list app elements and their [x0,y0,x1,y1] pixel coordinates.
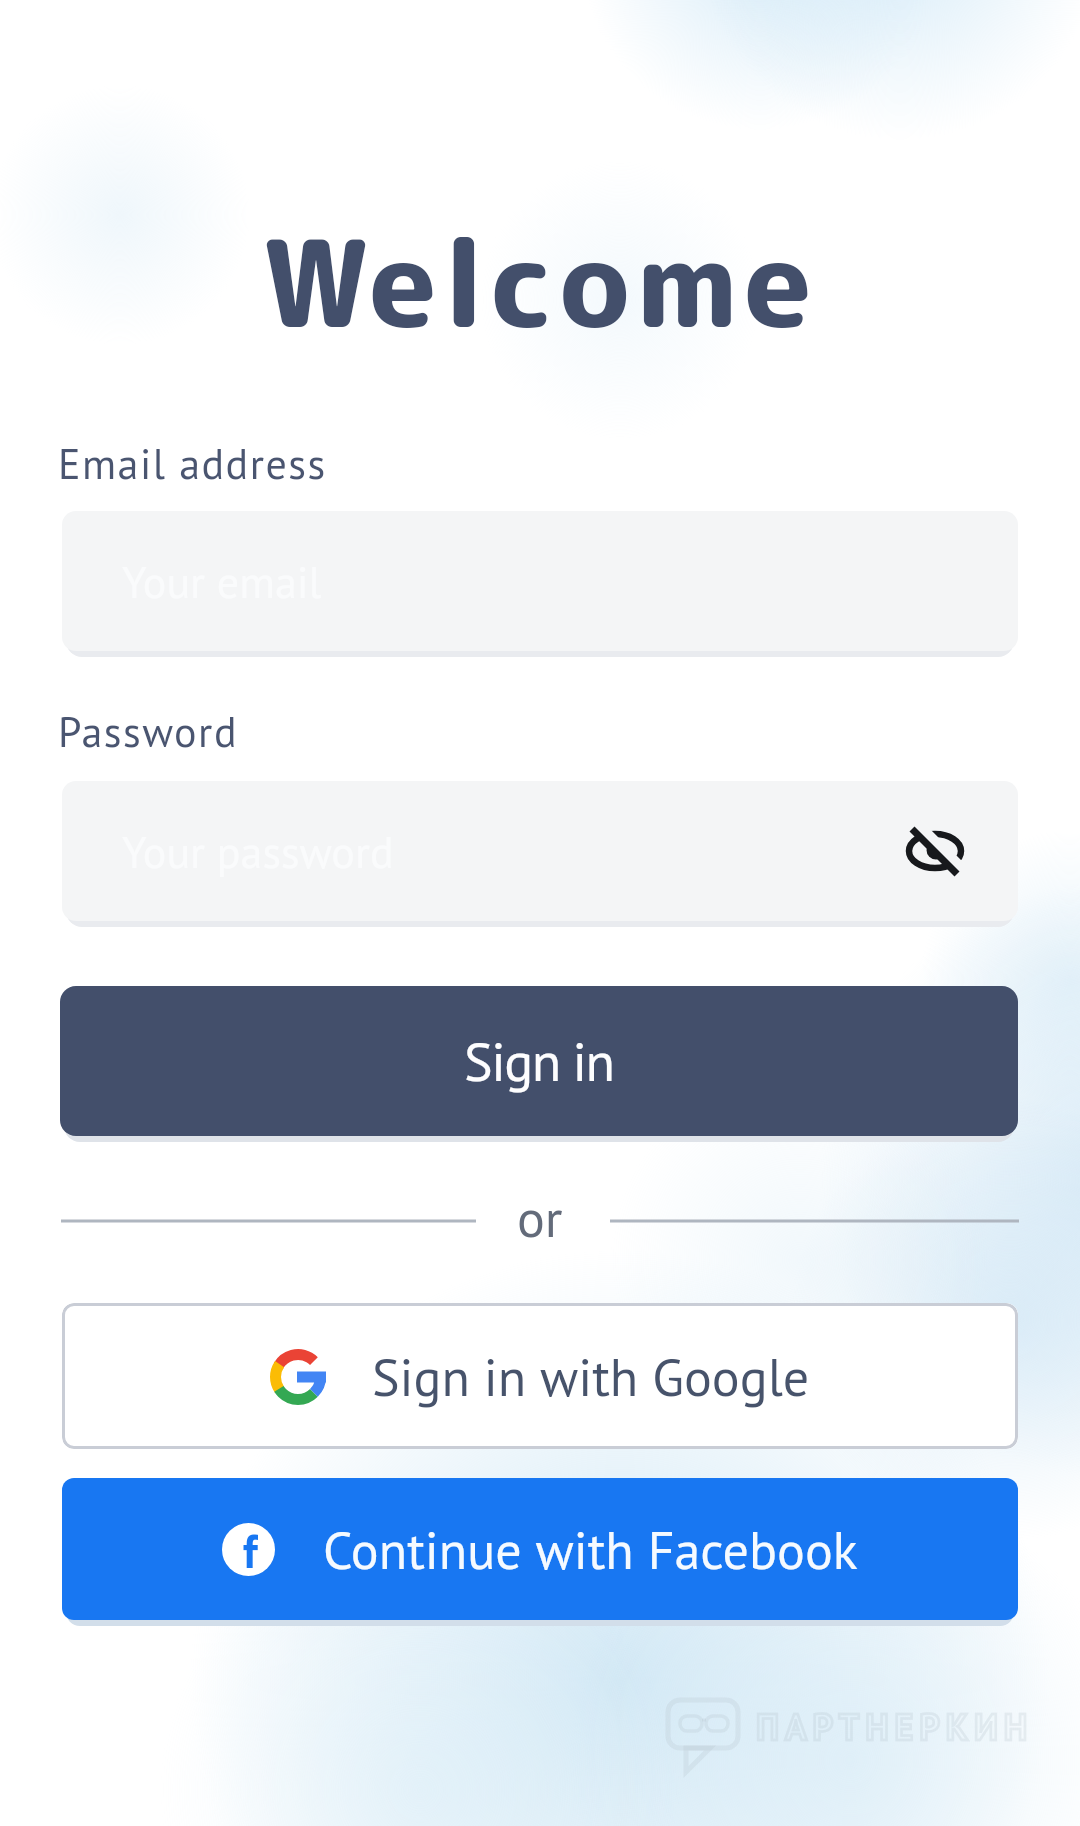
button[interactable]: Sign in [60,986,1018,1136]
staticText: Sign in with Google [372,1343,810,1410]
staticText: Welcome [262,198,818,365]
staticText: Password [58,704,239,758]
staticText: f [243,1523,258,1574]
button[interactable]: Sign in with Google [62,1303,1018,1449]
staticText: Continue with Facebook [323,1516,858,1583]
button[interactable]: f [62,1478,1018,1620]
staticText: or [517,1184,563,1251]
staticText: Sign in [464,1026,614,1096]
button[interactable]: Your password [62,781,1018,921]
staticText: ПАРТНЕРКИН [756,1703,1034,1750]
staticText: Email address [58,436,327,490]
